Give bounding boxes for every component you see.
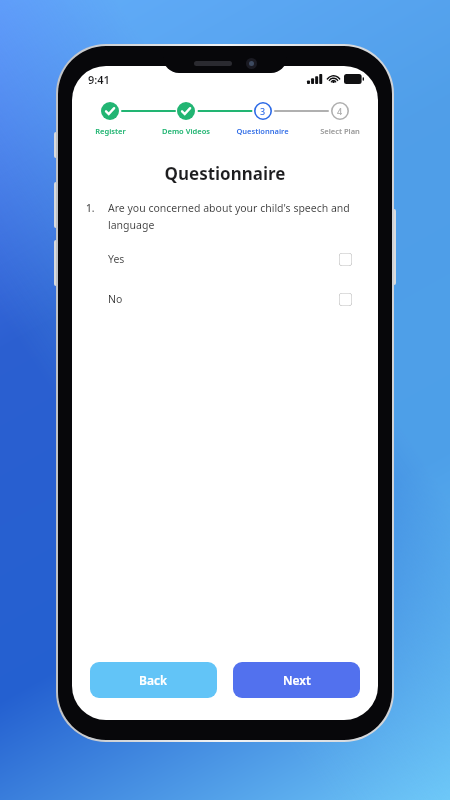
staticText: Questionnaire: [236, 126, 289, 136]
staticText: No: [108, 292, 123, 306]
staticText: Are you concerned about your child's spe…: [108, 201, 356, 232]
staticText: Demo Videos: [162, 126, 210, 136]
staticText: 3: [260, 105, 266, 117]
staticText: Yes: [108, 252, 125, 266]
button[interactable]: Yes: [72, 252, 378, 266]
button[interactable]: Back: [90, 662, 217, 698]
button[interactable]: Next: [233, 662, 360, 698]
staticText: Next: [283, 672, 311, 688]
staticText: 1.: [86, 201, 108, 215]
staticText: Questionnaire: [72, 162, 378, 185]
staticText: Back: [139, 672, 168, 688]
button[interactable]: 3: [224, 100, 301, 136]
button[interactable]: Register: [72, 100, 148, 136]
staticText: 4: [337, 105, 343, 117]
staticText: Select Plan: [320, 126, 360, 136]
button[interactable]: No: [72, 292, 378, 306]
button[interactable]: Demo Videos: [148, 100, 224, 136]
staticText: 9:41: [88, 72, 110, 87]
staticText: Register: [95, 126, 126, 136]
button[interactable]: 4: [301, 100, 378, 136]
